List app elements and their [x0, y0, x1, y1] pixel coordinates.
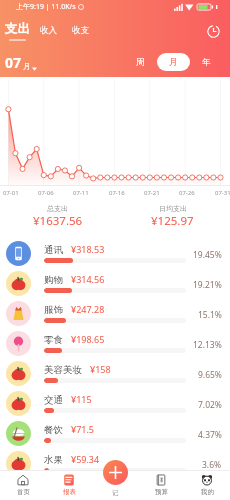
- button[interactable]: Add record: [103, 460, 128, 485]
- staticText: 9.65%: [198, 369, 222, 381]
- staticText: 交通: [44, 394, 63, 406]
- staticText: 我的: [201, 488, 214, 496]
- staticText: 周: [136, 57, 145, 68]
- staticText: 3.6%: [202, 459, 222, 471]
- staticText: 07: [5, 53, 22, 72]
- button[interactable]: 预算: [138, 470, 184, 500]
- staticText: ¥125.97: [151, 213, 194, 229]
- button[interactable]: 餐饮: [0, 418, 230, 448]
- staticText: 月: [23, 62, 31, 71]
- button[interactable]: 月: [157, 53, 190, 71]
- button[interactable]: 美容美妆: [0, 358, 230, 388]
- button[interactable]: 零食: [0, 328, 230, 358]
- staticText: ¥158: [90, 363, 111, 375]
- staticText: ¥247.28: [71, 303, 105, 315]
- button[interactable]: 首页: [0, 470, 46, 500]
- staticText: 12.13%: [193, 339, 222, 351]
- staticText: 记: [112, 489, 119, 497]
- staticText: 月: [169, 57, 178, 68]
- button[interactable]: 水果: [0, 448, 230, 478]
- staticText: 报表: [63, 488, 76, 496]
- button[interactable]: 交通: [0, 388, 230, 418]
- button[interactable]: 收支: [72, 25, 89, 36]
- button[interactable]: 支出: [3, 21, 32, 41]
- staticText: ¥198.65: [71, 333, 105, 345]
- staticText: 19.21%: [193, 279, 222, 291]
- staticText: 07-21: [144, 189, 160, 197]
- staticText: 零食: [44, 334, 63, 346]
- staticText: 首页: [17, 488, 30, 496]
- button[interactable]: 服饰: [0, 298, 230, 328]
- staticText: ¥59.34: [71, 453, 100, 465]
- button[interactable]: 我的: [184, 470, 230, 500]
- staticText: 预算: [155, 488, 168, 496]
- staticText: 07-31: [215, 189, 230, 197]
- staticText: 支出: [5, 21, 30, 37]
- button[interactable]: 年: [190, 53, 223, 71]
- staticText: ¥314.56: [71, 273, 105, 285]
- button[interactable]: Add record: [92, 470, 138, 500]
- button[interactable]: 购物: [0, 268, 230, 298]
- staticText: 总支出: [47, 204, 68, 213]
- staticText: 日均支出: [159, 204, 187, 213]
- staticText: 07-26: [179, 189, 195, 197]
- staticText: 07-16: [109, 189, 125, 197]
- staticText: ¥318.53: [71, 243, 105, 255]
- staticText: 餐饮: [44, 424, 63, 436]
- staticText: 水果: [44, 454, 63, 466]
- staticText: 年: [202, 57, 211, 68]
- button[interactable]: History: [207, 25, 220, 38]
- button[interactable]: 收入: [40, 25, 57, 36]
- button[interactable]: 周: [124, 53, 157, 71]
- staticText: ¥115: [71, 393, 92, 405]
- staticText: 上午9:19 | 11.0K/s: [16, 2, 76, 12]
- staticText: 4.37%: [198, 429, 222, 441]
- staticText: 美容美妆: [44, 364, 82, 376]
- staticText: 通讯: [44, 244, 63, 256]
- staticText: 7.02%: [198, 399, 222, 411]
- button[interactable]: 报表: [46, 470, 92, 500]
- staticText: 07-06: [38, 189, 54, 197]
- staticText: 服饰: [44, 304, 63, 316]
- staticText: 07-11: [73, 189, 89, 197]
- staticText: 15.1%: [198, 309, 222, 321]
- staticText: ¥71.5: [71, 423, 95, 435]
- staticText: 19.45%: [193, 249, 222, 261]
- staticText: 购物: [44, 274, 63, 286]
- staticText: ¥1637.56: [33, 213, 83, 229]
- button[interactable]: 通讯: [0, 238, 230, 268]
- button[interactable]: 07: [5, 53, 37, 72]
- staticText: 07-01: [3, 189, 19, 197]
